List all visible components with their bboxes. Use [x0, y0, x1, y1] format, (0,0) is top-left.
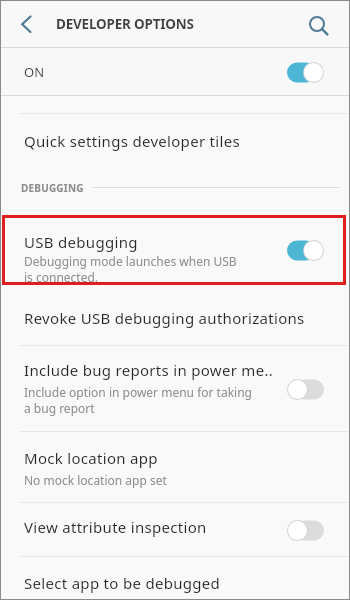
- staticText: Revoke USB debugging authorizations: [24, 308, 305, 328]
- staticText: DEVELOPER OPTIONS: [56, 15, 194, 33]
- staticText: View attribute inspection: [24, 517, 207, 537]
- button[interactable]: USB debugging: [2, 215, 346, 285]
- staticText: Include option in power menu for taking …: [24, 384, 252, 417]
- staticText: Select app to be debugged: [24, 573, 221, 593]
- button[interactable]: Select app to be debugged: [0, 557, 350, 600]
- staticText: Include bug reports in power me..: [24, 360, 274, 380]
- staticText: USB debugging: [24, 232, 138, 252]
- button[interactable]: Revoke USB debugging authorizations: [0, 289, 350, 346]
- button[interactable]: Mock location app: [0, 432, 350, 503]
- button[interactable]: Quick settings developer tiles: [0, 114, 350, 168]
- staticText: No mock location app set: [24, 472, 167, 488]
- staticText: Mock location app: [24, 448, 158, 468]
- button[interactable]: View attribute inspection: [0, 503, 350, 557]
- button[interactable]: ON: [0, 48, 350, 96]
- staticText: DEBUGGING: [21, 181, 84, 195]
- staticText: Quick settings developer tiles: [24, 131, 240, 151]
- button[interactable]: [306, 0, 350, 48]
- staticText: Debugging mode launches when USB is conn…: [24, 253, 237, 285]
- staticText: ON: [24, 63, 45, 81]
- button[interactable]: Include bug reports in power me..: [0, 346, 350, 432]
- button[interactable]: [0, 0, 44, 48]
